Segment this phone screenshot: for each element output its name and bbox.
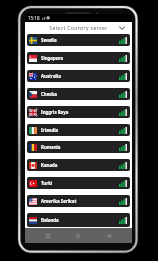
other: Signal strength xyxy=(119,109,127,116)
button[interactable]: Irlandia xyxy=(27,124,130,136)
button[interactable]: Turki xyxy=(27,177,130,189)
other: Signal strength xyxy=(119,73,127,80)
staticText: Australia xyxy=(41,73,61,79)
staticText: Turki xyxy=(41,180,53,186)
button[interactable]: Inggris Raya xyxy=(27,106,130,118)
button[interactable]: Select Country server xyxy=(25,22,132,34)
button[interactable]: Rumania xyxy=(27,141,130,153)
button[interactable]: Recents xyxy=(41,229,55,243)
other: Signal strength xyxy=(119,127,127,134)
button[interactable]: Cheska xyxy=(27,88,130,100)
staticText: Amerika Serikat xyxy=(41,198,77,204)
staticText: Swedia xyxy=(41,37,57,43)
staticText: Select Country server xyxy=(49,25,108,32)
other: Signal strength xyxy=(119,180,127,187)
staticText: 15:18 xyxy=(28,15,40,21)
button[interactable]: Kanada xyxy=(27,159,130,171)
other: Signal strength xyxy=(119,37,127,44)
staticText: Kanada xyxy=(41,162,58,168)
button[interactable]: Amerika Serikat xyxy=(27,195,130,207)
other: Signal strength xyxy=(119,55,127,62)
button[interactable]: Swedia xyxy=(27,34,130,46)
other: Signal strength xyxy=(119,144,127,151)
staticText: Irlandia xyxy=(41,127,59,133)
button[interactable]: Singapura xyxy=(27,52,130,64)
staticText: Singapura xyxy=(41,55,64,61)
staticText: Rumania xyxy=(41,144,61,150)
other: Signal strength xyxy=(119,91,127,98)
button[interactable]: Australia xyxy=(27,70,130,82)
button[interactable]: Back xyxy=(102,229,116,243)
staticText: Cheska xyxy=(41,91,57,97)
staticText: Inggris Raya xyxy=(41,109,69,115)
button[interactable]: Home xyxy=(71,229,85,243)
other: Signal strength xyxy=(119,162,127,169)
button[interactable]: Belanda xyxy=(27,213,130,227)
other: Signal strength xyxy=(119,217,127,224)
other: Signal strength xyxy=(119,198,127,205)
staticText: Belanda xyxy=(41,217,59,223)
